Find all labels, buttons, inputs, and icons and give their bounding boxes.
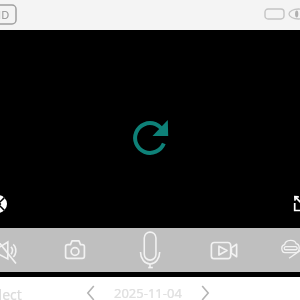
- button[interactable]: Next day: [198, 284, 212, 300]
- button[interactable]: Pan tilt control: [0, 195, 7, 213]
- button[interactable]: HD: [0, 5, 16, 24]
- button[interactable]: Snapshot: [61, 234, 89, 262]
- button[interactable]: Previous day: [84, 284, 98, 300]
- button[interactable]: Live view: [289, 9, 300, 19]
- button[interactable]: Battery: [265, 9, 284, 19]
- button[interactable]: Cloud storage: [281, 239, 299, 253]
- staticText: 2025-11-04: [114, 284, 182, 300]
- button[interactable]: Fullscreen: [292, 194, 300, 214]
- staticText: HD: [0, 7, 10, 22]
- button[interactable]: Mute: [0, 238, 18, 262]
- button[interactable]: Talk: [135, 228, 165, 272]
- button[interactable]: Record: [207, 236, 241, 264]
- button[interactable]: Select: [0, 285, 22, 300]
